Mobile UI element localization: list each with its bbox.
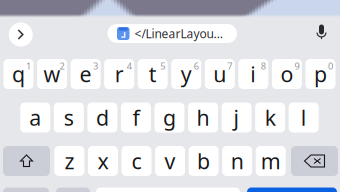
staticText: a xyxy=(29,103,41,132)
staticText: 2 xyxy=(59,60,64,72)
staticText: k xyxy=(265,103,276,132)
button[interactable]: d xyxy=(87,102,117,132)
staticText: l xyxy=(301,103,307,132)
staticText: 5 xyxy=(160,60,165,72)
button[interactable]: l xyxy=(289,102,319,132)
button[interactable]: z xyxy=(54,146,84,176)
staticText: t xyxy=(149,60,157,88)
button[interactable]: b xyxy=(189,146,219,176)
staticText: o xyxy=(280,60,293,88)
button[interactable]: k xyxy=(255,102,285,132)
staticText: d xyxy=(96,103,109,132)
staticText: z xyxy=(64,147,74,175)
staticText: n xyxy=(231,147,244,175)
button[interactable]: m xyxy=(256,146,286,176)
button[interactable]: t xyxy=(138,59,168,89)
staticText: 9 xyxy=(294,60,299,72)
staticText: p xyxy=(314,60,327,88)
staticText: 1 xyxy=(26,60,31,72)
staticText: c xyxy=(131,147,141,175)
staticText: x xyxy=(97,147,108,175)
button[interactable]: </LinearLayou… xyxy=(107,24,237,43)
staticText: 8 xyxy=(261,60,266,72)
button[interactable]: u xyxy=(205,59,235,89)
button[interactable]: p xyxy=(305,59,335,89)
button[interactable]: Delete xyxy=(291,146,338,176)
staticText: f xyxy=(132,103,139,132)
button[interactable]: j xyxy=(222,102,252,132)
button[interactable]: Go xyxy=(247,187,337,192)
staticText: q xyxy=(12,60,25,88)
button[interactable]: Dictate xyxy=(308,19,334,45)
button[interactable]: r xyxy=(104,59,134,89)
button[interactable]: g xyxy=(154,102,184,132)
staticText: 0 xyxy=(328,60,333,72)
staticText: v xyxy=(164,147,175,175)
button[interactable]: x xyxy=(88,146,118,176)
button[interactable]: Emoji xyxy=(56,187,90,192)
button[interactable]: Numbers xyxy=(3,187,49,192)
button[interactable]: c xyxy=(121,146,151,176)
staticText: 7 xyxy=(227,60,232,72)
staticText: h xyxy=(196,103,209,132)
staticText: u xyxy=(213,60,226,88)
staticText: b xyxy=(197,147,210,175)
staticText: g xyxy=(163,103,176,132)
button[interactable]: y xyxy=(171,59,201,89)
staticText: 4 xyxy=(127,60,132,72)
button[interactable]: Next field xyxy=(9,22,33,46)
button[interactable]: h xyxy=(188,102,218,132)
button[interactable]: e xyxy=(71,59,101,89)
staticText: s xyxy=(64,103,74,132)
staticText: 6 xyxy=(194,60,199,72)
button[interactable]: o xyxy=(272,59,302,89)
staticText: i xyxy=(250,60,256,88)
staticText: m xyxy=(261,147,281,175)
staticText: 3 xyxy=(93,60,98,72)
staticText: y xyxy=(181,60,192,88)
staticText: e xyxy=(80,60,92,88)
button[interactable]: i xyxy=(238,59,268,89)
button[interactable]: w xyxy=(37,59,67,89)
button[interactable]: a xyxy=(20,102,50,132)
staticText: r xyxy=(115,60,124,88)
button[interactable]: q xyxy=(3,59,33,89)
button[interactable]: Shift xyxy=(3,146,50,176)
staticText: j xyxy=(234,103,240,132)
button[interactable]: n xyxy=(222,146,252,176)
button[interactable]: s xyxy=(54,102,84,132)
staticText: w xyxy=(43,60,60,88)
button[interactable]: f xyxy=(121,102,151,132)
button[interactable]: v xyxy=(155,146,185,176)
staticText: </LinearLayou… xyxy=(134,25,222,41)
